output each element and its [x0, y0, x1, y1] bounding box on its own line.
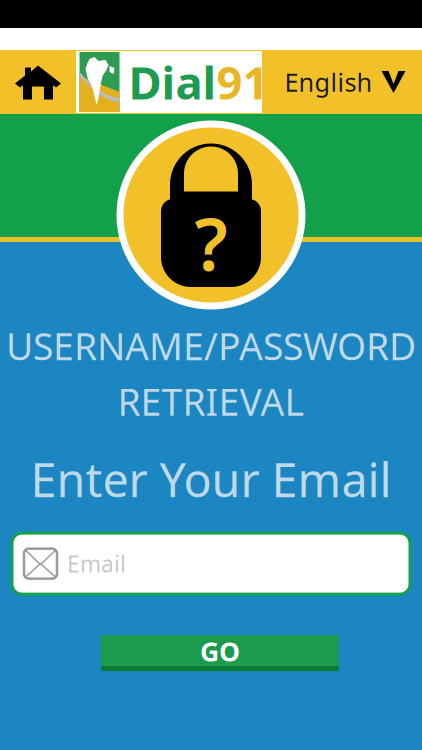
- button[interactable]: Home: [0, 50, 76, 114]
- button[interactable]: GO: [101, 635, 339, 671]
- staticText: 91: [216, 52, 268, 112]
- staticText: USERNAME/PASSWORD: [6, 321, 416, 371]
- staticText: GO: [200, 633, 240, 669]
- staticText: ?: [194, 195, 227, 291]
- staticText: RETRIEVAL: [117, 377, 304, 426]
- staticText: English: [284, 65, 372, 99]
- staticText: Email: [67, 549, 126, 579]
- button[interactable]: English: [274, 50, 421, 114]
- staticText: Dial: [128, 52, 216, 112]
- staticText: Enter Your Email: [30, 448, 391, 510]
